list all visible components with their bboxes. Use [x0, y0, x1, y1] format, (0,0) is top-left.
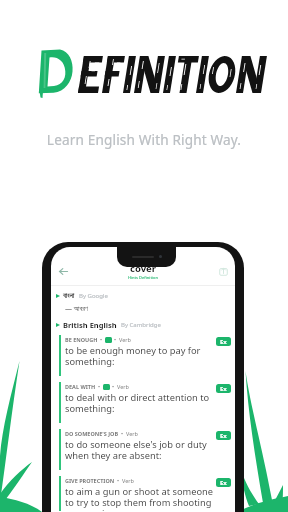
- staticText: BE ENOUGH: [65, 336, 98, 343]
- staticText: to be enough money to pay for something:: [65, 344, 201, 367]
- staticText: Ex: [220, 338, 227, 346]
- button[interactable]: Ex: [216, 384, 231, 393]
- staticText: GIVE PROTECTION: [65, 477, 115, 484]
- staticText: Verb: [126, 430, 138, 437]
- button[interactable]: Ex: [216, 337, 231, 346]
- staticText: Verb: [117, 383, 129, 390]
- staticText: to do someone else's job or duty when th…: [65, 438, 207, 461]
- staticText: Ex: [220, 432, 227, 440]
- button[interactable]: Back: [56, 264, 70, 278]
- staticText: British English: [63, 320, 117, 330]
- button[interactable]: Ex: [216, 478, 231, 487]
- button[interactable]: Ex: [216, 431, 231, 440]
- staticText: Learn English With Right Way.: [0, 130, 288, 149]
- staticText: Hints Definition: [128, 275, 158, 280]
- staticText: •: [112, 383, 115, 390]
- staticText: Ex: [220, 479, 227, 487]
- staticText: Verb: [122, 477, 134, 484]
- staticText: •: [117, 477, 120, 484]
- staticText: •: [121, 430, 124, 437]
- staticText: By Cambridge: [121, 321, 161, 329]
- staticText: By Google: [79, 292, 108, 300]
- button[interactable]: BE ENOUGH: [59, 335, 235, 376]
- button[interactable]: British English: [56, 320, 235, 330]
- staticText: — আবরণ: [65, 304, 88, 314]
- staticText: to aim a gun or shoot at someone to try …: [65, 485, 216, 511]
- button[interactable]: GIVE PROTECTION: [59, 476, 235, 511]
- button[interactable]: DO SOMEONE'S JOB: [59, 429, 235, 470]
- staticText: •: [114, 336, 117, 343]
- staticText: cover: [130, 262, 156, 275]
- staticText: DEAL WITH: [65, 383, 96, 390]
- staticText: DO SOMEONE'S JOB: [65, 430, 119, 437]
- button[interactable]: বাংলা: [56, 291, 235, 300]
- staticText: Ex: [220, 385, 227, 393]
- staticText: Verb: [119, 336, 131, 343]
- staticText: to deal with or direct attention to some…: [65, 391, 210, 414]
- staticText: •: [100, 336, 103, 343]
- staticText: •: [98, 383, 101, 390]
- staticText: বাংলা: [63, 292, 75, 299]
- button[interactable]: Share: [216, 264, 230, 278]
- button[interactable]: DEAL WITH: [59, 382, 235, 423]
